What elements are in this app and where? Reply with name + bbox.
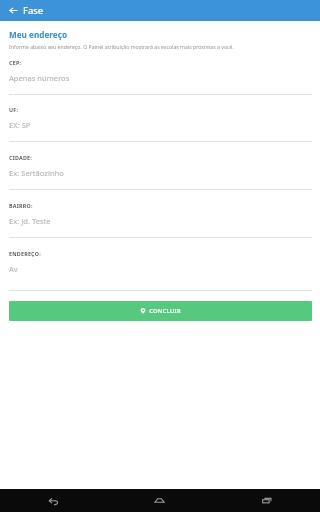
button[interactable]: Home xyxy=(106,489,213,512)
staticText: CIDADE: xyxy=(9,154,33,161)
staticText: Ex: Sertãozinho xyxy=(9,168,64,178)
staticText: BAIRRO: xyxy=(9,202,33,209)
button[interactable]: EX: SP xyxy=(0,120,320,130)
staticText: CEP: xyxy=(9,59,22,66)
button[interactable]: CONCLUIR xyxy=(9,301,312,321)
button[interactable]: Ex: Sertãozinho xyxy=(0,168,320,178)
staticText: Meu endereço xyxy=(9,29,68,40)
staticText: Apenas números xyxy=(9,73,70,83)
button[interactable]: Apenas números xyxy=(0,73,320,83)
button[interactable]: Av xyxy=(0,264,320,274)
button[interactable]: Fase xyxy=(0,0,52,21)
staticText: Av xyxy=(9,264,18,274)
staticText: Ex: Jd. Teste xyxy=(9,216,51,226)
staticText: Informe abaixo seu endereço. O Painel at… xyxy=(9,43,234,50)
button[interactable]: Back xyxy=(0,489,106,512)
staticText: ENDEREÇO: xyxy=(9,250,41,257)
button[interactable]: Ex: Jd. Teste xyxy=(0,216,320,226)
staticText: EX: SP xyxy=(9,120,31,130)
staticText: Fase xyxy=(23,4,44,17)
button[interactable]: Recent apps xyxy=(213,489,320,512)
staticText: CONCLUIR xyxy=(149,307,181,315)
staticText: UF: xyxy=(9,106,19,113)
